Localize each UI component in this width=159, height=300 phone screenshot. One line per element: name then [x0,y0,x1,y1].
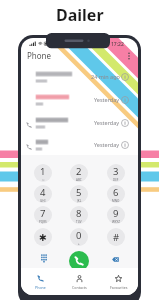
button[interactable]: Keypad [38,252,50,264]
staticText: ✱ [39,232,47,243]
staticText: 6 [113,186,119,199]
button[interactable]: 0 [70,228,88,246]
staticText: MNO [112,199,120,203]
button[interactable]: 8 [70,206,88,224]
button[interactable]: Yesterday [21,114,138,136]
staticText: Yesterday [94,141,120,148]
staticText: + [78,242,80,246]
button[interactable]: Yesterday [21,136,138,158]
button[interactable]: 1 [34,164,52,182]
button[interactable]: 9 [107,206,125,224]
button[interactable]: 2 [70,164,88,182]
staticText: Phone [27,50,52,61]
button[interactable]: Favourites [99,268,138,295]
staticText: # [113,231,120,244]
button[interactable]: More options [123,50,135,62]
button[interactable]: Call details [120,118,130,128]
button[interactable]: 24 min ago [21,68,138,90]
staticText: 17:22 [111,41,124,48]
button[interactable]: 5 [70,185,88,203]
button[interactable]: Call [69,251,89,271]
staticText: 1 [40,165,46,178]
button[interactable]: Phone [21,268,60,295]
staticText: TUV [76,220,82,224]
staticText: PQRS [39,220,47,224]
button[interactable]: # [107,228,125,246]
staticText: 3 [113,165,119,178]
staticText: 7 [40,207,46,220]
button[interactable]: Call details [120,95,130,105]
button[interactable]: ✱ [34,228,52,246]
staticText: GHI [40,199,46,203]
staticText: DEF [113,178,119,182]
button[interactable]: Call details [120,140,130,150]
staticText: WXYZ [112,220,120,224]
button[interactable]: 6 [107,185,125,203]
staticText: 2 [76,165,82,178]
staticText: 9 [113,207,119,220]
staticText: 5 [76,186,82,199]
staticText: JKL [77,199,82,203]
button[interactable]: 4 [34,185,52,203]
button[interactable]: 3 [107,164,125,182]
staticText: 4 [40,186,46,199]
button[interactable]: Contacts [60,268,99,295]
staticText: Yesterday [94,119,120,126]
staticText: Dailer [56,4,104,26]
staticText: Contacts [72,285,87,290]
button[interactable]: Call details [120,72,130,82]
staticText: Phone [35,285,46,290]
staticText: ABC [76,178,82,182]
staticText: 0 [76,229,82,242]
staticText: ∾ [42,178,45,181]
staticText: Yesterday [94,96,120,103]
staticText: 24 min ago [91,73,120,80]
button[interactable]: 7 [34,206,52,224]
staticText: Favourites [110,285,128,290]
button[interactable]: Yesterday [21,91,138,113]
staticText: 8 [76,207,82,220]
button[interactable]: Backspace [109,253,121,265]
